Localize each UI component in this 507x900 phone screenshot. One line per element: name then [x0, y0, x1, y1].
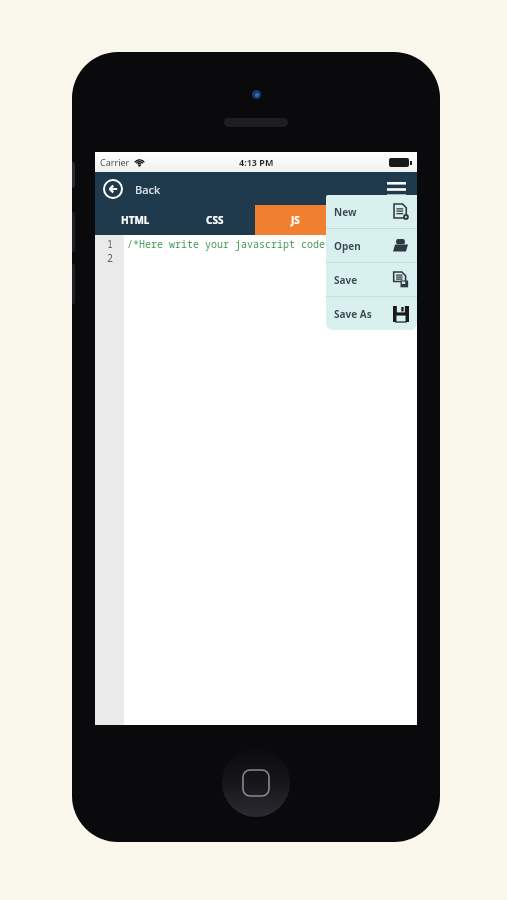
staticText: 1 — [107, 237, 113, 251]
button[interactable]: Save — [326, 263, 417, 296]
staticText: Back — [135, 182, 161, 197]
staticText: 4:13 PM — [239, 156, 274, 168]
staticText: 2 — [107, 251, 113, 265]
staticText: CSS — [206, 213, 224, 227]
staticText: Carrier — [100, 156, 130, 168]
staticText: New — [334, 205, 357, 219]
button[interactable]: HTML — [95, 205, 175, 235]
staticText: /*Here write your javascript code*/ — [127, 237, 337, 251]
button[interactable]: New — [326, 195, 417, 228]
staticText: JS — [291, 213, 300, 227]
button[interactable]: CSS — [175, 205, 255, 235]
button[interactable]: Save As — [326, 297, 417, 330]
staticText: Open — [334, 239, 361, 253]
button[interactable]: Home — [222, 749, 290, 817]
staticText: Save — [334, 273, 358, 287]
staticText: HTML — [121, 213, 150, 227]
staticText: Save As — [334, 307, 372, 321]
button[interactable]: Back — [103, 179, 161, 199]
button[interactable]: Menu — [383, 176, 409, 202]
button[interactable]: Open — [326, 229, 417, 262]
button[interactable]: JS — [255, 205, 336, 235]
